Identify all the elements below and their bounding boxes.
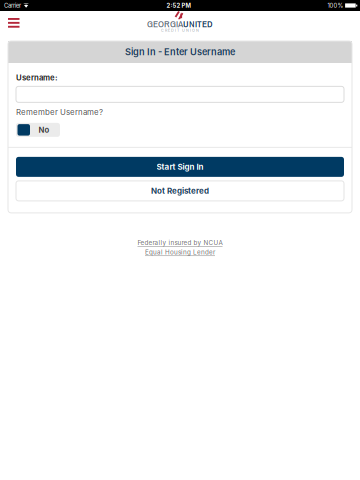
staticText: GEORGIA [147,18,183,30]
button[interactable]: Federally insured by NCUA [137,239,222,246]
staticText: Remember Username? [16,107,103,117]
button[interactable]: Remember Username: No [16,123,60,137]
staticText: No [38,125,49,135]
staticText: Carrier [4,2,21,9]
staticText: Username: [16,73,58,82]
staticText: 100% [328,2,344,9]
staticText: Start Sign In [156,162,203,172]
staticText: UNITED [183,18,213,30]
staticText: Sign In - Enter Username [125,46,235,57]
staticText: 2:52 PM [166,2,190,9]
staticText: C R E D I T U N I O N [161,28,199,33]
button[interactable]: Start Sign In [16,157,344,177]
button[interactable]: Equal Housing Lender [145,248,215,256]
button[interactable]: Not Registered [16,181,344,201]
staticText: Not Registered [151,186,209,196]
button[interactable]: Menu [0,11,27,36]
staticText: Equal Housing Lender [145,248,215,256]
staticText: Federally insured by NCUA [137,239,222,246]
